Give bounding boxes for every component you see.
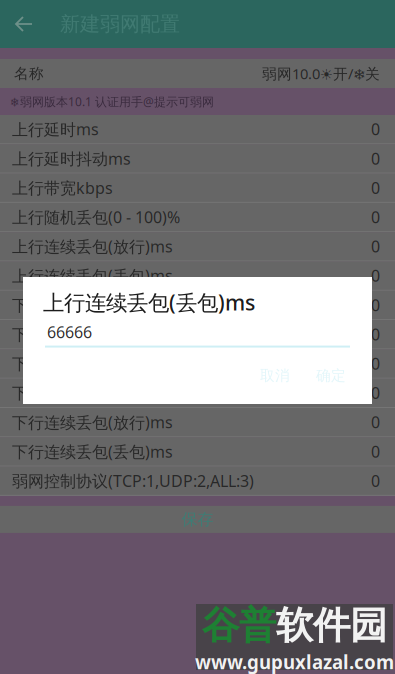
staticText: 0 [371,411,380,433]
staticText: 0 [371,177,380,198]
button[interactable]: 上行随机丢包(0 - 100)% [0,203,395,232]
staticText: 弱网10.0☀开/❄关 [262,64,380,83]
staticText: 下行连续丢包(放行)ms [12,411,173,433]
button[interactable]: 下行延时ms [0,291,395,320]
staticText: 上行连续丢包(放行)ms [12,236,173,257]
staticText: 0 [371,441,380,462]
button[interactable]: 名称 [0,59,395,88]
staticText: 下行连续丢包(丢包)ms [12,441,173,462]
staticText: 0 [371,236,380,257]
button[interactable]: 下行随机丢包(0 - 100)% [0,379,395,408]
button[interactable]: 上行连续丢包(放行)ms [0,232,395,261]
staticText: 0 [371,294,380,315]
staticText: ❄弱网版本10.1 认证用手@提示可弱网 [10,93,214,109]
button[interactable]: 确定 [306,361,356,391]
button[interactable]: 上行带宽kbps [0,174,395,203]
button[interactable]: 返回 [0,0,48,48]
staticText: 保存 [181,510,213,529]
staticText: 0 [371,353,380,374]
staticText: 谷普 [202,603,276,649]
staticText: 0 [371,148,380,169]
staticText: 0 [371,118,380,140]
staticText: 0 [371,265,380,286]
staticText: 0 [371,382,380,403]
staticText: 新建弱网配置 [60,12,180,36]
staticText: 0 [371,206,380,228]
button[interactable]: 上行延时抖动ms [0,144,395,174]
staticText: 0 [371,324,380,345]
staticText: 0 [371,470,380,491]
button[interactable]: 上行延时ms [0,115,395,144]
staticText: 上行随机丢包(0 - 100)% [12,206,180,228]
button[interactable]: 上行连续丢包(丢包)ms [0,261,395,291]
button[interactable]: 下行延时抖动ms [0,320,395,349]
staticText: 软件园 [276,603,387,649]
staticText: 上行连续丢包(丢包)ms [43,288,255,316]
staticText: 下行随机丢包(0 - 100)% [12,382,180,403]
staticText: 上行延时ms [12,118,99,140]
staticText: 下行延时抖动ms [12,324,131,345]
button[interactable]: 下行连续丢包(放行)ms [0,408,395,437]
button[interactable]: 弱网控制协议(TCP:1,UDP:2,ALL:3) [0,467,395,496]
staticText: 弱网控制协议(TCP:1,UDP:2,ALL:3) [12,470,254,491]
staticText: 上行带宽kbps [12,177,113,198]
staticText: 确定 [316,367,346,385]
staticText: 上行延时抖动ms [12,148,131,169]
staticText: 取消 [260,367,290,385]
staticText: 上行连续丢包(丢包)ms [12,265,173,286]
button[interactable]: 下行连续丢包(丢包)ms [0,437,395,467]
staticText: 66666 [47,321,92,342]
button[interactable]: 下行带宽kbps [0,349,395,379]
button[interactable]: 取消 [250,361,300,391]
staticText: 名称 [14,64,44,82]
staticText: 下行带宽kbps [12,353,113,374]
staticText: www.gupuxlazal.com [195,649,394,674]
staticText: 下行延时ms [12,294,99,315]
button[interactable]: 保存 [0,506,395,533]
